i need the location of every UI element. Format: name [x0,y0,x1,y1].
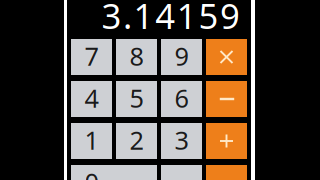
button[interactable]: Subtract [206,81,247,117]
staticText: 1 [84,123,98,157]
button[interactable]: 7 [71,39,112,75]
button[interactable]: 5 [116,81,157,117]
button[interactable]: 2 [116,123,157,159]
staticText: 3.14159 [101,0,240,38]
staticText: 5 [129,81,143,115]
button[interactable]: 8 [116,39,157,75]
button[interactable]: 9 [161,39,202,75]
button[interactable]: 3 [161,123,202,159]
staticText: 3 [174,123,188,157]
staticText: 2 [129,123,143,157]
button[interactable]: 6 [161,81,202,117]
button[interactable]: Add [206,123,247,159]
staticText: 7 [84,39,98,73]
staticText: 9 [174,39,188,73]
staticText: 4 [84,81,98,115]
staticText: 8 [129,39,143,73]
staticText: 0 [84,165,98,180]
button[interactable]: 4 [71,81,112,117]
button[interactable]: 0 [71,165,157,180]
staticText: 6 [174,81,188,115]
button[interactable]: Multiply [206,39,247,75]
button[interactable]: 1 [71,123,112,159]
